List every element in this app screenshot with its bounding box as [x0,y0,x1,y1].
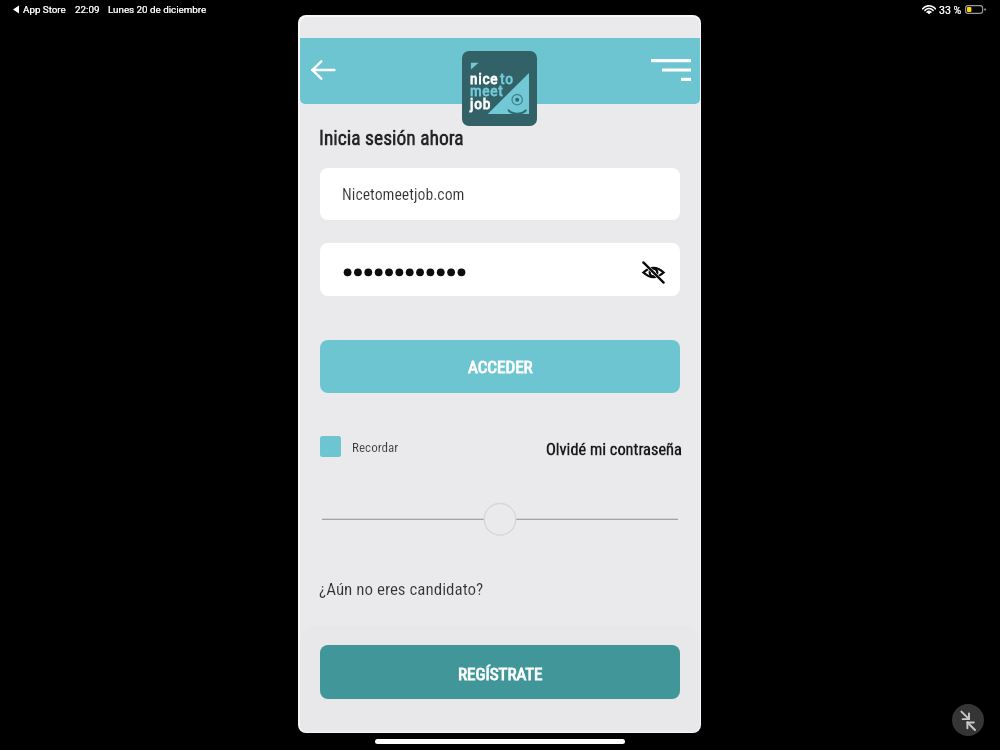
button[interactable]: Nicetomeetjob.com [320,168,680,220]
button[interactable]: Show password [320,243,680,296]
staticText: 33 % [939,4,962,16]
button[interactable]: Exit zoom [952,704,984,736]
button[interactable]: Recordar [320,436,399,457]
button[interactable]: Back [300,47,345,92]
staticText: Nicetomeetjob.com [342,185,465,204]
button[interactable]: Show password [636,255,670,289]
staticText: Inicia sesión ahora [319,127,464,150]
staticText: App Store [23,4,66,15]
staticText: 22:09 [75,4,100,15]
staticText: meet [470,82,504,100]
staticText: job [470,95,491,113]
button[interactable]: REGÍSTRATE [320,645,680,699]
button[interactable]: ACCEDER [320,340,680,393]
staticText: Recordar [352,440,399,455]
staticText: Lunes 20 de diciembre [108,4,207,15]
staticText: to [500,70,514,88]
button[interactable]: Menu [641,50,691,90]
staticText: REGÍSTRATE [458,664,543,684]
staticText: ¿Aún no eres candidato? [319,579,484,599]
button[interactable]: Olvidé mi contraseña [546,440,682,459]
staticText: ACCEDER [468,357,533,377]
staticText: nice [470,70,499,88]
